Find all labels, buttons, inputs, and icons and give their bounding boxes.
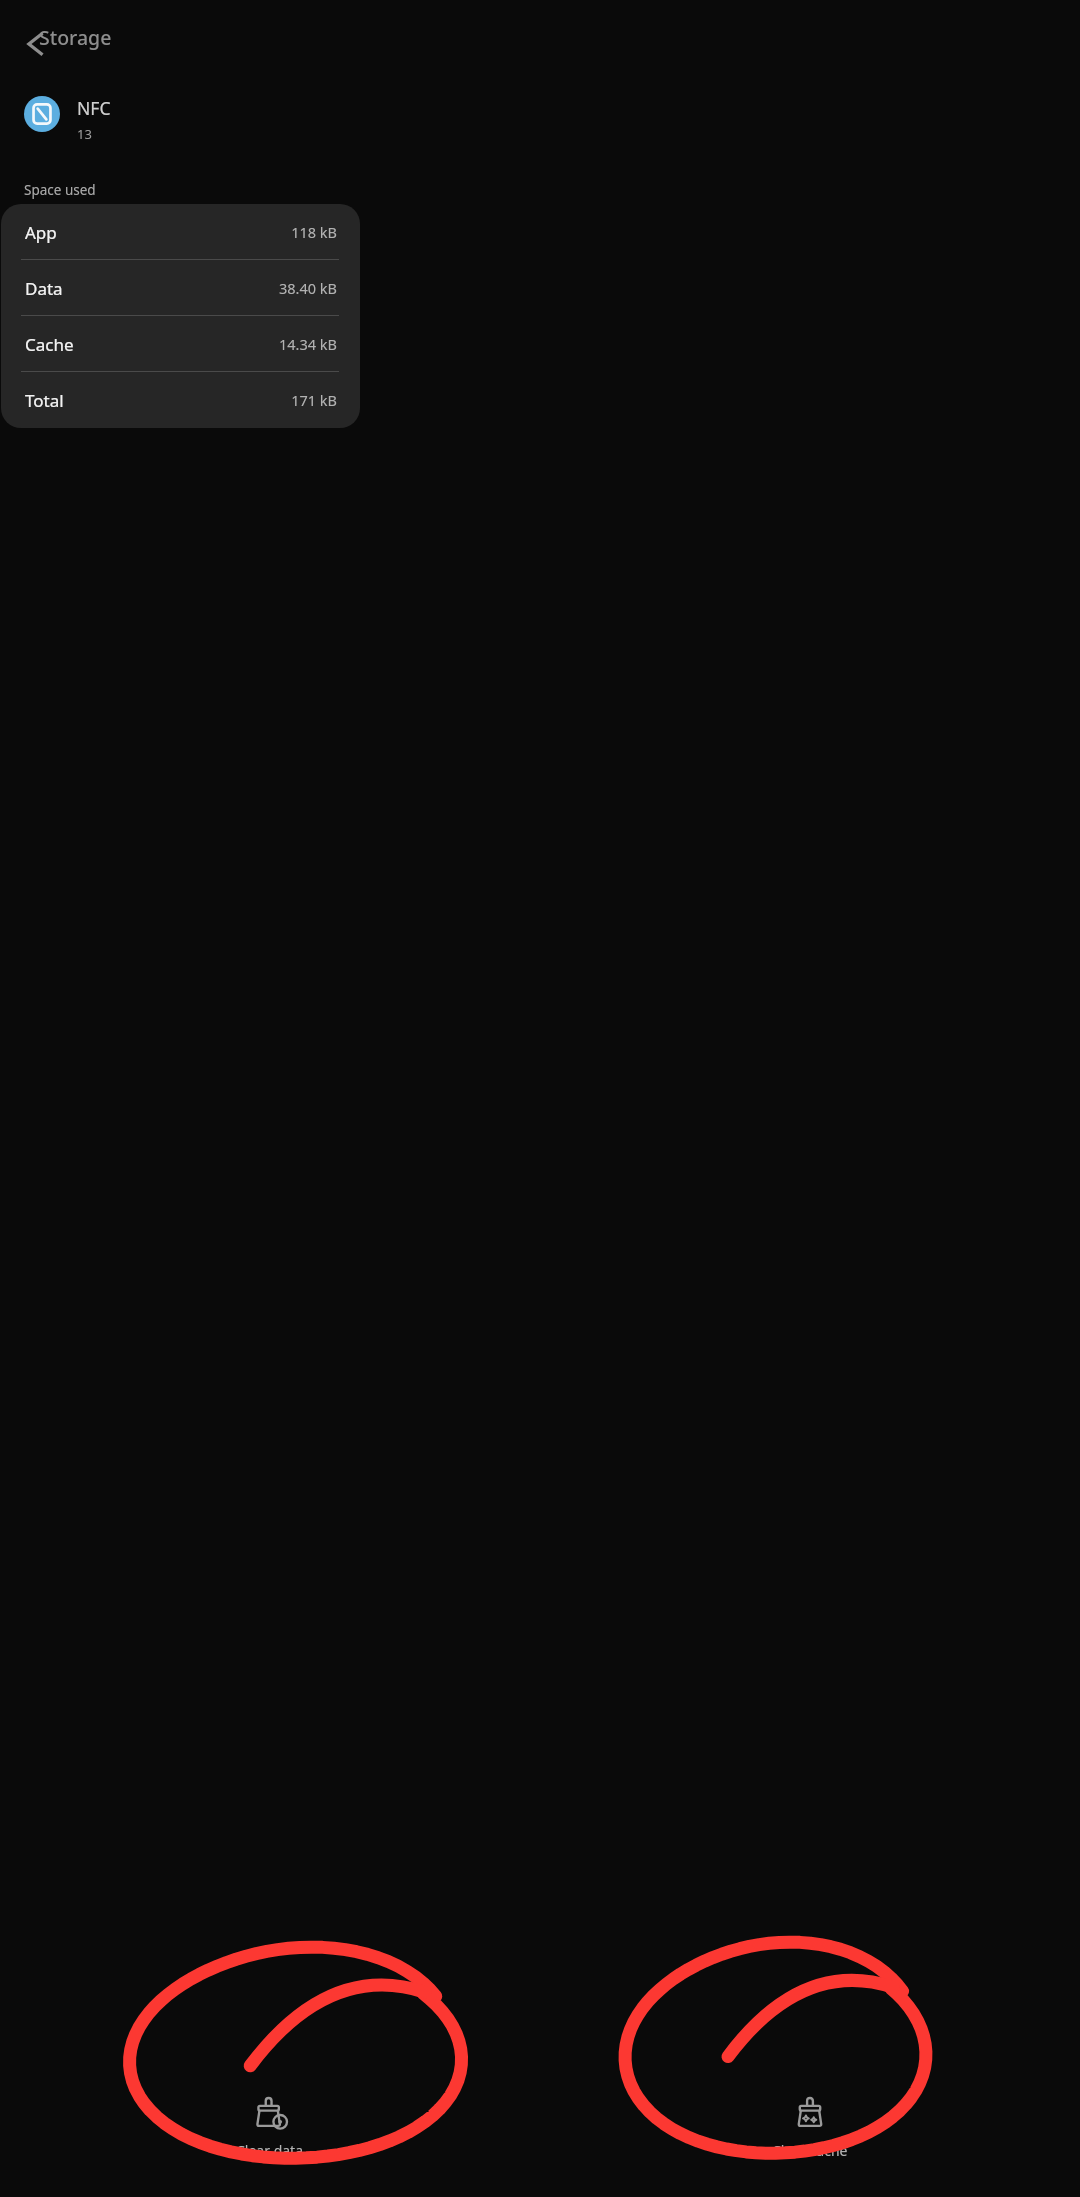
button[interactable]: Clear data — [0, 2072, 540, 2192]
staticText: Data — [25, 277, 63, 300]
staticText: Cache — [25, 333, 74, 356]
button[interactable]: App — [1, 204, 360, 260]
staticText: App — [25, 221, 57, 244]
staticText: Clear cache — [772, 2141, 848, 2160]
button[interactable]: Clear cache — [540, 2072, 1080, 2192]
button[interactable]: Data — [1, 260, 360, 316]
staticText: 118 kB — [291, 222, 337, 242]
staticText: NFC — [77, 96, 111, 120]
button[interactable]: Total — [1, 372, 360, 428]
staticText: Space used — [24, 181, 96, 199]
staticText: Storage — [39, 24, 112, 51]
button[interactable]: Back — [10, 22, 54, 66]
staticText: 38.40 kB — [279, 278, 337, 298]
staticText: 13 — [77, 125, 92, 143]
staticText: 171 kB — [291, 390, 337, 410]
staticText: Total — [25, 389, 64, 412]
staticText: Clear data — [236, 2141, 304, 2160]
staticText: 14.34 kB — [279, 334, 337, 354]
button[interactable]: Cache — [1, 316, 360, 372]
